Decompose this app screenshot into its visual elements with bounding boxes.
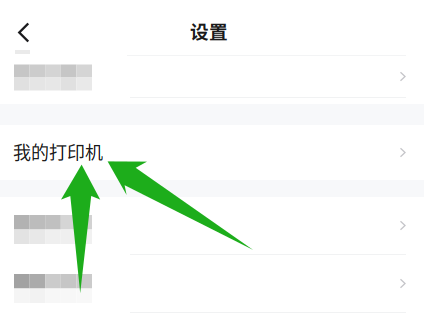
button[interactable]: 我的打印机 (0, 125, 424, 180)
button[interactable]: Display (0, 255, 424, 312)
button[interactable]: Setting (0, 197, 424, 254)
staticText: 设置 (190, 17, 228, 44)
button[interactable]: Account (0, 56, 424, 97)
button[interactable]: Back (0, 0, 42, 55)
staticText: 我的打印机 (13, 138, 103, 165)
